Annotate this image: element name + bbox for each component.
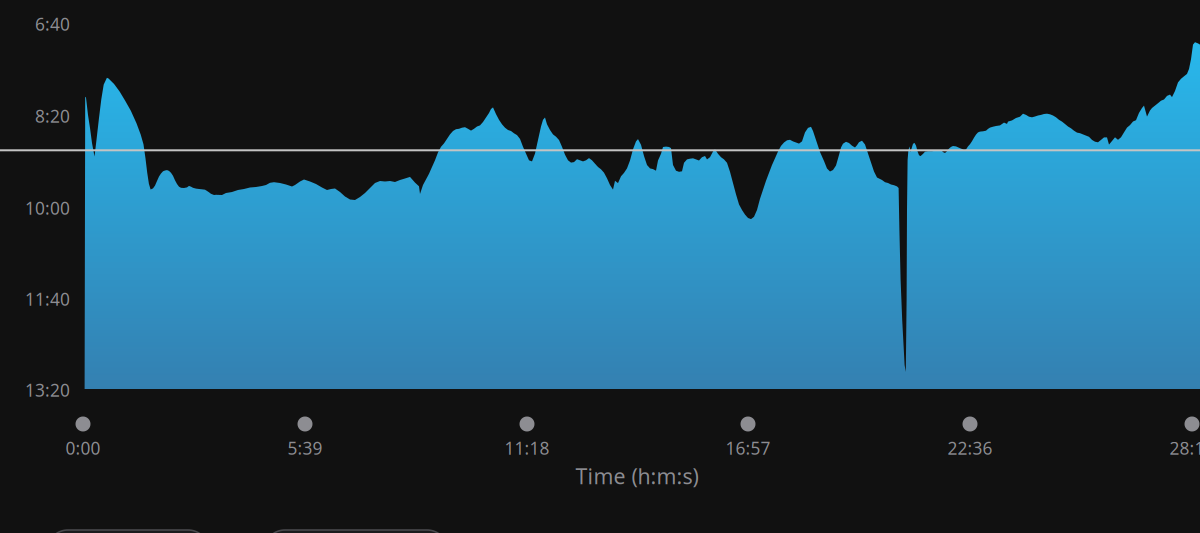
button[interactable] [264,530,448,533]
staticText: 22:36 [947,436,992,459]
staticText: 11:18 [504,436,549,459]
staticText: 8:20 [35,104,70,127]
staticText: 5:39 [287,436,322,459]
staticText: 13:20 [25,378,70,401]
staticText: 6:40 [35,12,70,35]
staticText: Time (h:m:s) [575,462,698,490]
staticText: 16:57 [725,436,770,459]
staticText: 11:40 [25,287,70,310]
staticText: 0:00 [65,436,100,459]
staticText: 28:15 [1169,436,1200,459]
button[interactable] [47,530,209,533]
staticText: 10:00 [25,196,70,219]
